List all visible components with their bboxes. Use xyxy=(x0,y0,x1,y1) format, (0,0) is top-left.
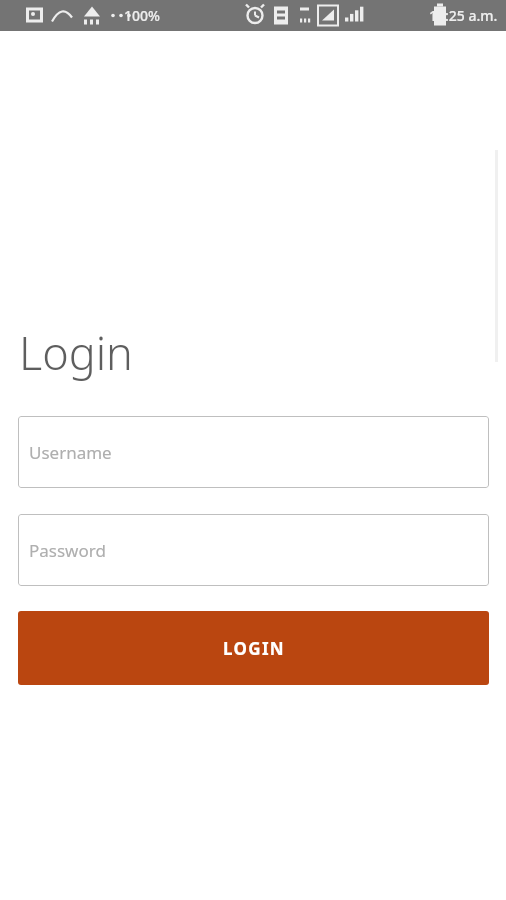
staticText: LOGIN xyxy=(223,637,285,660)
staticText: Username xyxy=(29,441,112,464)
button[interactable]: LOGIN xyxy=(18,611,489,685)
staticText: Password xyxy=(29,539,106,562)
staticText: Login xyxy=(19,322,133,383)
button[interactable]: Username xyxy=(18,416,489,488)
staticText: 11:25 a.m. xyxy=(429,6,498,25)
button[interactable]: Password xyxy=(18,514,489,586)
staticText: 100% xyxy=(124,6,160,25)
